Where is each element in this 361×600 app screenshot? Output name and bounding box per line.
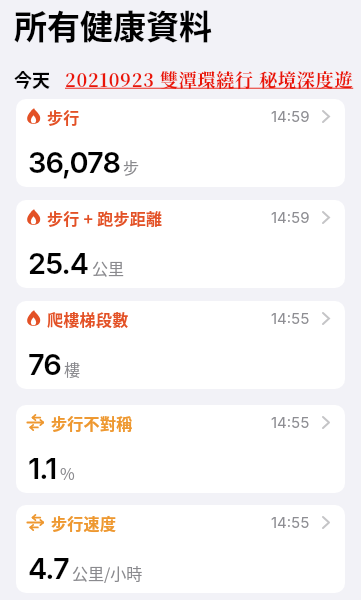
button[interactable]: 步行 + 跑步距離 (16, 200, 345, 288)
staticText: 36,078 (28, 145, 120, 180)
staticText: 步 (123, 155, 140, 178)
staticText: 25.4 (28, 246, 89, 281)
staticText: % (60, 461, 75, 484)
staticText: 14:55 (271, 513, 310, 531)
staticText: 所有健康資料 (14, 1, 212, 49)
staticText: 14:55 (271, 413, 310, 431)
staticText: 樓 (64, 357, 81, 380)
button[interactable]: 步行 (16, 99, 345, 187)
staticText: 14:55 (271, 309, 310, 327)
button[interactable]: 爬樓梯段數 (16, 301, 345, 389)
staticText: 步行 (47, 105, 80, 127)
button[interactable]: 20210923 雙潭環繞行 秘境深度遊 (65, 66, 354, 92)
staticText: 步行 + 跑步距離 (47, 206, 163, 228)
staticText: 公里/小時 (72, 561, 143, 584)
button[interactable]: 步行不對稱 (16, 405, 345, 493)
button[interactable]: 步行速度 (16, 505, 345, 593)
staticText: 4.7 (28, 551, 69, 586)
staticText: 76 (28, 347, 61, 382)
staticText: 步行不對稱 (51, 411, 133, 433)
staticText: 14:59 (271, 208, 310, 226)
staticText: 步行速度 (51, 511, 117, 533)
staticText: 今天 (14, 66, 50, 92)
staticText: 1.1 (28, 451, 57, 486)
staticText: 14:59 (271, 107, 310, 125)
staticText: 公里 (92, 256, 125, 279)
staticText: 爬樓梯段數 (47, 307, 129, 329)
